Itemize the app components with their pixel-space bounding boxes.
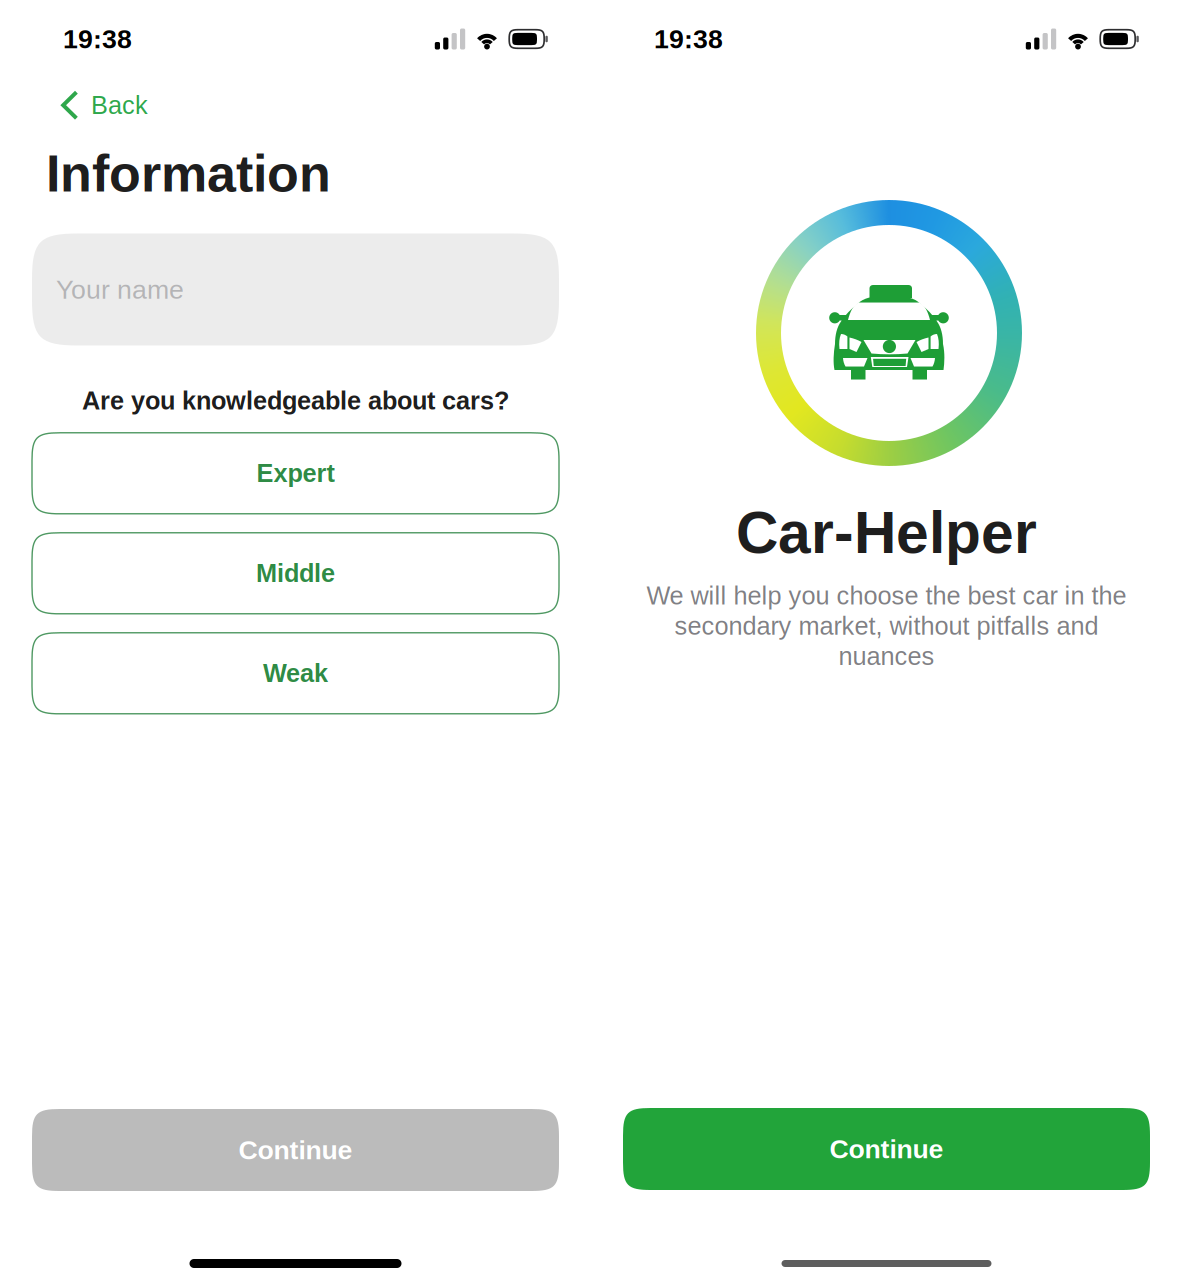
button[interactable]: Continue (623, 1108, 1150, 1190)
staticText: 19:38 (63, 24, 132, 54)
staticText: Continue (238, 1135, 352, 1165)
staticText: Your name (56, 275, 184, 304)
staticText: Are you knowledgeable about cars? (82, 386, 509, 415)
button[interactable]: Expert (32, 433, 559, 514)
button[interactable]: Weak (32, 633, 559, 714)
staticText: Back (91, 91, 148, 119)
staticText: We will help you choose the best car in … (646, 581, 1126, 610)
button[interactable]: Back (0, 86, 164, 124)
staticText: nuances (838, 642, 934, 670)
staticText: Middle (256, 559, 335, 587)
button[interactable]: Middle (32, 533, 559, 614)
button[interactable]: Your name (32, 233, 559, 345)
staticText: Continue (829, 1134, 943, 1164)
button[interactable]: Continue (32, 1109, 559, 1191)
staticText: Car-Helper (736, 500, 1037, 565)
staticText: 19:38 (654, 24, 723, 54)
staticText: Information (46, 144, 331, 202)
staticText: secondary market, without pitfalls and (674, 612, 1098, 640)
staticText: Weak (263, 659, 328, 687)
staticText: Expert (256, 459, 334, 487)
